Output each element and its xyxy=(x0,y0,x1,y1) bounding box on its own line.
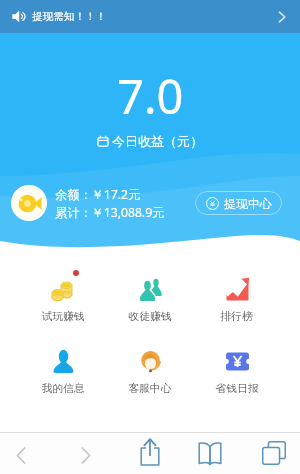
button[interactable]: Share xyxy=(130,432,170,472)
button[interactable]: 试玩赚钱 xyxy=(20,272,106,324)
button[interactable]: 排行榜 xyxy=(193,272,280,324)
button[interactable]: 提现中心 xyxy=(195,191,282,215)
staticText: 收徒赚钱 xyxy=(128,310,172,324)
staticText: 我的信息 xyxy=(41,382,85,396)
staticText: 提现中心 xyxy=(224,196,272,211)
button[interactable]: Forward xyxy=(66,435,106,474)
staticText: 排行榜 xyxy=(220,310,253,324)
button[interactable]: Back xyxy=(1,435,41,474)
button[interactable]: Bookmarks xyxy=(190,433,230,473)
button[interactable]: 客服中心 xyxy=(106,344,193,396)
staticText: 试玩赚钱 xyxy=(41,310,85,324)
staticText: 7.0 xyxy=(117,64,184,128)
staticText: 客服中心 xyxy=(128,382,172,396)
button[interactable]: Tabs xyxy=(254,433,294,473)
button[interactable]: 提现需知！！！ xyxy=(0,0,300,33)
staticText: 余额：￥17.2元 xyxy=(55,186,141,203)
button[interactable]: 我的信息 xyxy=(20,344,106,396)
staticText: 累计：￥13,088.9元 xyxy=(55,204,165,221)
staticText: 今日收益（元） xyxy=(112,133,203,149)
button[interactable]: 省钱日报 xyxy=(193,344,280,396)
staticText: 提现需知！！！ xyxy=(32,10,107,23)
button[interactable]: 收徒赚钱 xyxy=(106,272,193,324)
staticText: 省钱日报 xyxy=(215,382,259,396)
